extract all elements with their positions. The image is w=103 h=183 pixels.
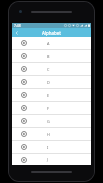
staticText: A <box>47 41 50 46</box>
button[interactable]: Play <box>12 141 91 153</box>
other: Play <box>21 40 27 46</box>
staticText: 7:48 <box>14 23 21 28</box>
button[interactable]: Play <box>12 76 91 88</box>
other: Play <box>21 92 27 98</box>
button[interactable]: Play <box>12 115 91 127</box>
other: Play <box>21 144 27 150</box>
other: Play <box>21 66 27 72</box>
other: Play <box>21 118 27 124</box>
button[interactable]: Play <box>12 63 91 75</box>
button[interactable]: Play <box>12 37 91 49</box>
staticText: C <box>47 67 50 72</box>
staticText: I <box>47 145 49 150</box>
other: Play <box>21 131 27 137</box>
other: Play <box>21 53 27 59</box>
other: Play <box>21 79 27 85</box>
staticText: H <box>47 132 50 137</box>
staticText: Alphabet <box>42 30 61 36</box>
staticText: F <box>47 106 49 111</box>
button[interactable]: Play <box>12 89 91 101</box>
other: Play <box>21 105 27 111</box>
button[interactable]: Play <box>12 128 91 140</box>
button[interactable]: Play <box>12 50 91 62</box>
button[interactable]: Back <box>12 28 21 37</box>
button[interactable]: Play <box>12 102 91 114</box>
button[interactable]: Play <box>12 154 91 165</box>
staticText: J <box>47 157 49 162</box>
staticText: D <box>47 80 50 85</box>
staticText: E <box>47 93 50 98</box>
other: Play <box>21 157 27 163</box>
staticText: B <box>47 54 50 59</box>
staticText: G <box>47 119 50 124</box>
